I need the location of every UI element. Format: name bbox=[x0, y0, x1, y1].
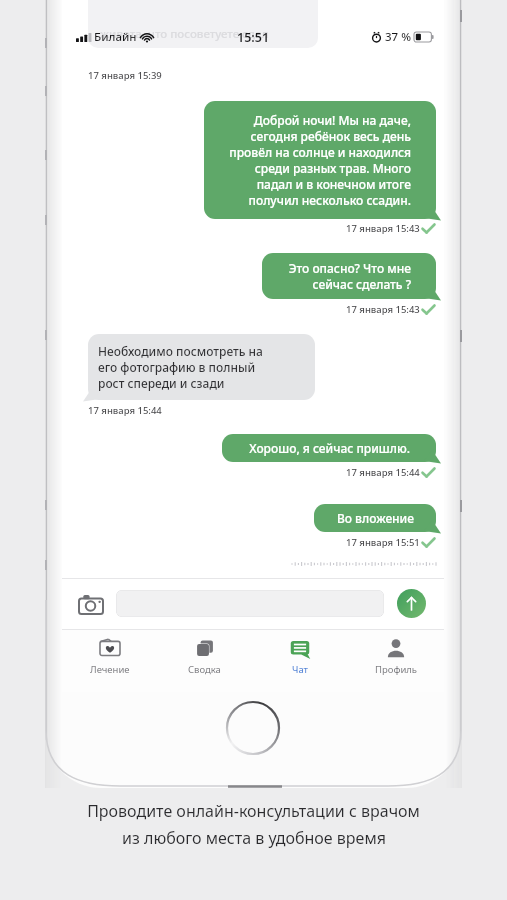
staticText: Во вложение bbox=[336, 510, 414, 526]
staticText: 15:51 bbox=[237, 29, 270, 46]
staticText: Чат bbox=[292, 663, 308, 676]
staticText: живота, что посоветуете сдел bbox=[100, 26, 269, 42]
button[interactable]: Отправить bbox=[397, 589, 426, 618]
button[interactable]: Прикрепить фото bbox=[74, 587, 108, 621]
staticText: Хорошо, я сейчас пришлю. bbox=[249, 440, 410, 456]
staticText: Билайн bbox=[94, 29, 137, 45]
button[interactable]: Сводка bbox=[157, 637, 252, 692]
staticText: из любого места в удобное время bbox=[122, 827, 386, 849]
staticText: Это опасно? Что мне сейчас сделать ? bbox=[288, 260, 411, 292]
staticText: 17 января 15:39 bbox=[88, 69, 162, 82]
button[interactable]: Лечение bbox=[62, 637, 157, 692]
staticText: Профиль bbox=[375, 663, 418, 676]
staticText: Доброй ночи! Мы на даче, сегодня ребёнок… bbox=[229, 112, 411, 208]
staticText: 17 января 15:43 bbox=[346, 303, 420, 316]
button[interactable]: Чат bbox=[252, 637, 348, 692]
staticText: 17 января 15:43 bbox=[346, 222, 420, 235]
button[interactable]: Необходимо посмотреть на его фотографию … bbox=[88, 334, 315, 400]
staticText: 17 января 15:44 bbox=[88, 404, 162, 417]
button[interactable]: Во вложение bbox=[314, 504, 436, 532]
button[interactable]: Профиль bbox=[348, 637, 444, 692]
staticText: Проводите онлайн-консультации с врачом bbox=[87, 800, 420, 822]
button[interactable]: Доброй ночи! Мы на даче, сегодня ребёнок… bbox=[204, 101, 436, 219]
button[interactable]: Хорошо, я сейчас пришлю. bbox=[222, 434, 436, 462]
staticText: Лечение bbox=[90, 663, 130, 676]
staticText: 17 января 15:44 bbox=[346, 466, 420, 479]
staticText: Сводка bbox=[188, 663, 221, 676]
staticText: 17 января 15:51 bbox=[346, 536, 420, 549]
staticText: Необходимо посмотреть на его фотографию … bbox=[98, 343, 263, 391]
staticText: 37 % bbox=[385, 29, 411, 45]
button[interactable]: Это опасно? Что мне сейчас сделать ? bbox=[262, 253, 436, 299]
